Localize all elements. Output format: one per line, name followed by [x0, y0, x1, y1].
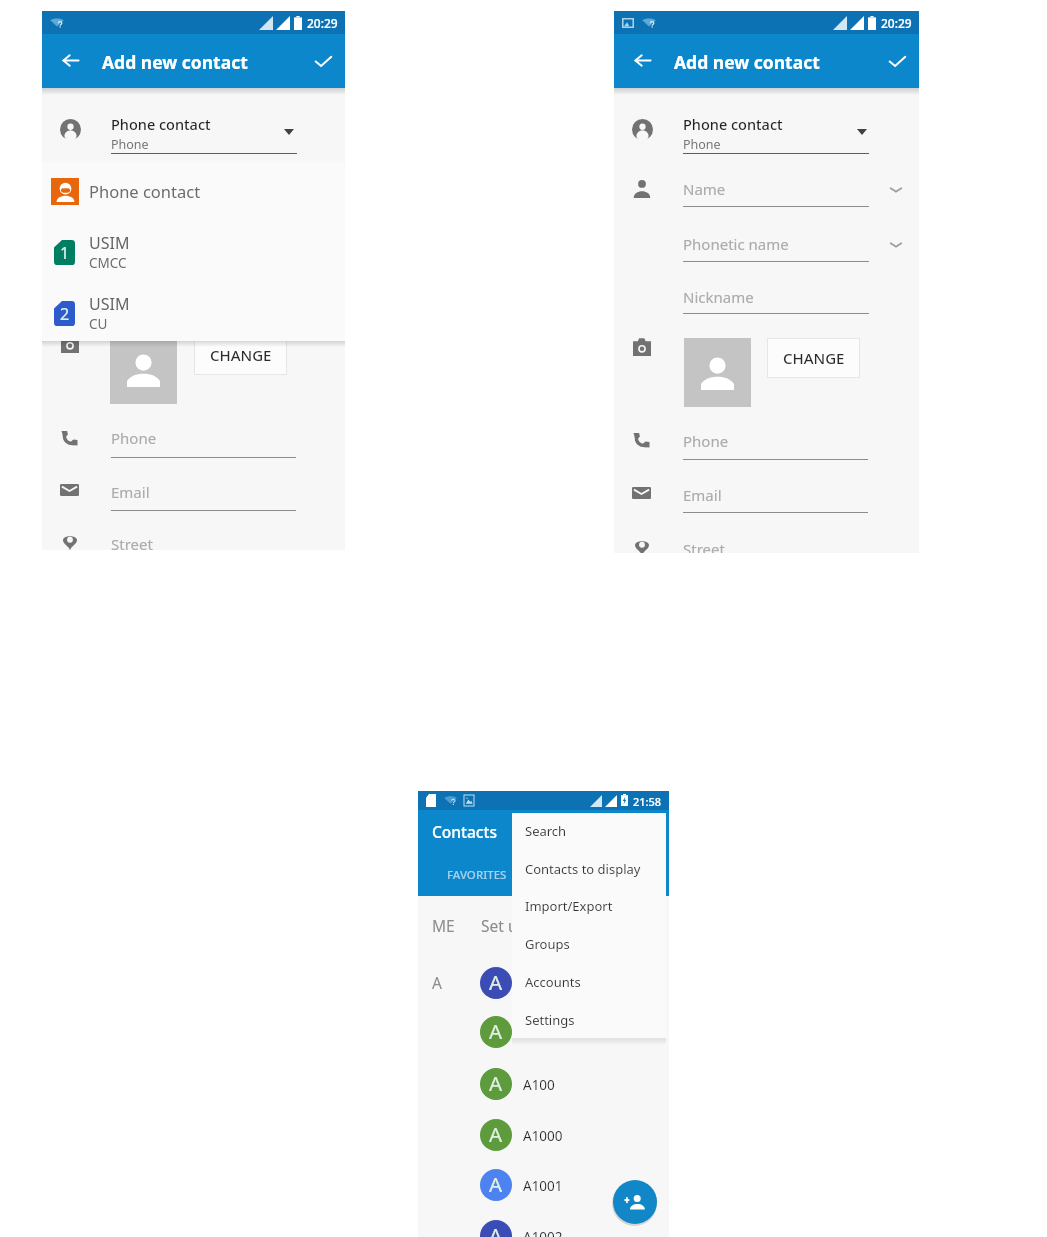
staticText: Import/Export [525, 897, 613, 915]
staticText: USIM [89, 232, 130, 254]
staticText: 20:29 [881, 15, 912, 31]
staticText: Street [683, 539, 725, 553]
staticText: Set up my profile [481, 915, 605, 936]
button[interactable]: Settings [512, 1001, 666, 1039]
staticText: A [489, 1170, 503, 1198]
staticText: A [432, 972, 442, 993]
button[interactable]: A [418, 1220, 669, 1237]
staticText: CHANGE [210, 345, 272, 365]
button[interactable]: Save [301, 34, 345, 88]
staticText: Nickname [683, 287, 754, 307]
button[interactable]: A [418, 1016, 669, 1061]
staticText: Add new contact [674, 50, 820, 74]
staticText: Phone contact [683, 114, 783, 134]
button[interactable]: CHANGE [767, 338, 860, 378]
button[interactable]: Groups [512, 925, 666, 963]
button[interactable]: CHANGE [194, 335, 287, 375]
button[interactable]: Import/Export [512, 887, 666, 925]
staticText: USIM [89, 293, 130, 315]
staticText: Email [683, 485, 722, 505]
button[interactable] [51, 178, 79, 205]
staticText: Name [683, 179, 726, 199]
staticText: A1000 [523, 1127, 563, 1145]
staticText: Phone contact [89, 180, 201, 202]
staticText: Contacts [432, 821, 497, 842]
button[interactable]: Save [875, 34, 919, 88]
staticText: A [489, 1017, 503, 1045]
staticText: 21:58 [633, 794, 662, 809]
staticText: Phone [683, 136, 721, 153]
staticText: 20:29 [307, 15, 338, 31]
staticText: Email [111, 482, 150, 502]
staticText: Settings [525, 1011, 575, 1029]
button[interactable]: Accounts [512, 963, 666, 1001]
staticText: 1 [60, 242, 70, 264]
staticText: CMCC [89, 254, 127, 272]
button[interactable]: Back [617, 34, 669, 86]
staticText: Search [525, 822, 567, 840]
staticText: A1002 [523, 1228, 563, 1237]
staticText: ME [432, 915, 455, 936]
staticText: A [489, 968, 503, 996]
button[interactable]: Contacts to display [512, 850, 666, 888]
staticText: Accounts [525, 973, 581, 991]
button[interactable]: Expand name [883, 179, 909, 201]
button[interactable]: 1 [54, 240, 75, 265]
staticText: CHANGE [783, 348, 845, 368]
button[interactable]: A [418, 1169, 669, 1214]
button[interactable]: A [418, 967, 669, 1012]
staticText: Phone [111, 136, 149, 153]
staticText: CU [89, 315, 108, 333]
button[interactable]: Expand phonetic name [883, 234, 909, 256]
staticText: A100 [523, 1076, 555, 1094]
button[interactable]: Back [45, 34, 97, 86]
staticText: Contacts to display [525, 860, 641, 878]
staticText: A [489, 1120, 503, 1148]
staticText: Street [111, 534, 153, 550]
staticText: Phone [683, 431, 729, 451]
button[interactable]: 2 [54, 301, 75, 326]
staticText: Add new contact [102, 50, 248, 74]
button[interactable]: A [418, 1068, 669, 1113]
staticText: A [489, 1069, 503, 1097]
staticText: Phone [111, 428, 157, 448]
staticText: Phonetic name [683, 234, 789, 254]
button[interactable]: Search [512, 812, 666, 850]
button[interactable]: Add contact [613, 1180, 657, 1224]
staticText: 2 [60, 303, 70, 325]
staticText: A1001 [523, 1177, 563, 1195]
staticText: A [489, 1221, 503, 1237]
staticText: FAVORITES [447, 867, 507, 883]
staticText: Phone contact [111, 114, 211, 134]
staticText: Groups [525, 935, 570, 953]
button[interactable]: A [418, 1119, 669, 1164]
